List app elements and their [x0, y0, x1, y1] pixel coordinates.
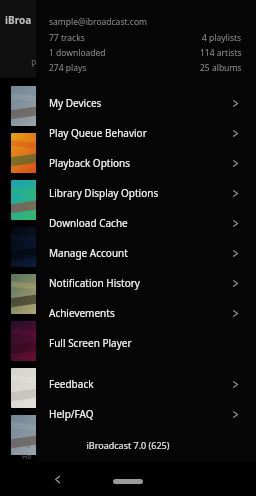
staticText: 25 albums — [200, 62, 242, 74]
staticText: iBroadcast 7.0 (625) — [36, 439, 220, 451]
staticText: 274 plays — [49, 62, 87, 74]
staticText: sample@ibroadcast.com — [49, 16, 147, 28]
staticText: My Devices — [49, 96, 102, 110]
staticText: Play Queue Behavior — [49, 126, 147, 140]
button[interactable]: Feedback — [36, 369, 256, 399]
staticText: 4 playlists — [202, 32, 242, 44]
staticText: Playback Options — [49, 156, 131, 170]
button[interactable]: Download Cache — [36, 208, 256, 238]
staticText: 114 artists — [200, 47, 242, 59]
staticText: Feedback — [49, 377, 94, 391]
button[interactable]: Manage Account — [36, 238, 256, 268]
button[interactable]: My Devices — [36, 88, 256, 118]
button[interactable]: Help/FAQ — [36, 399, 256, 429]
staticText: Download Cache — [49, 216, 128, 230]
staticText: Achievements — [49, 306, 115, 320]
button[interactable]: Back — [47, 469, 67, 489]
staticText: Ho — [22, 452, 32, 462]
staticText: Library Display Options — [49, 186, 159, 200]
button[interactable]: Playback Options — [36, 148, 256, 178]
button[interactable]: Home — [111, 474, 145, 488]
staticText: 1 downloaded — [49, 47, 106, 59]
button[interactable]: Notification History — [36, 268, 256, 298]
staticText: [ — [27, 438, 30, 449]
staticText: P — [31, 57, 37, 69]
staticText: Full Screen Player — [49, 336, 132, 350]
staticText: 77 tracks — [49, 32, 85, 44]
button[interactable]: Full Screen Player — [36, 328, 256, 358]
staticText: Notification History — [49, 276, 140, 290]
button[interactable]: Library Display Options — [36, 178, 256, 208]
staticText: iBroa — [5, 13, 32, 27]
staticText: Help/FAQ — [49, 407, 94, 421]
staticText: Manage Account — [49, 246, 128, 260]
button[interactable]: Achievements — [36, 298, 256, 328]
button[interactable]: Play Queue Behavior — [36, 118, 256, 148]
